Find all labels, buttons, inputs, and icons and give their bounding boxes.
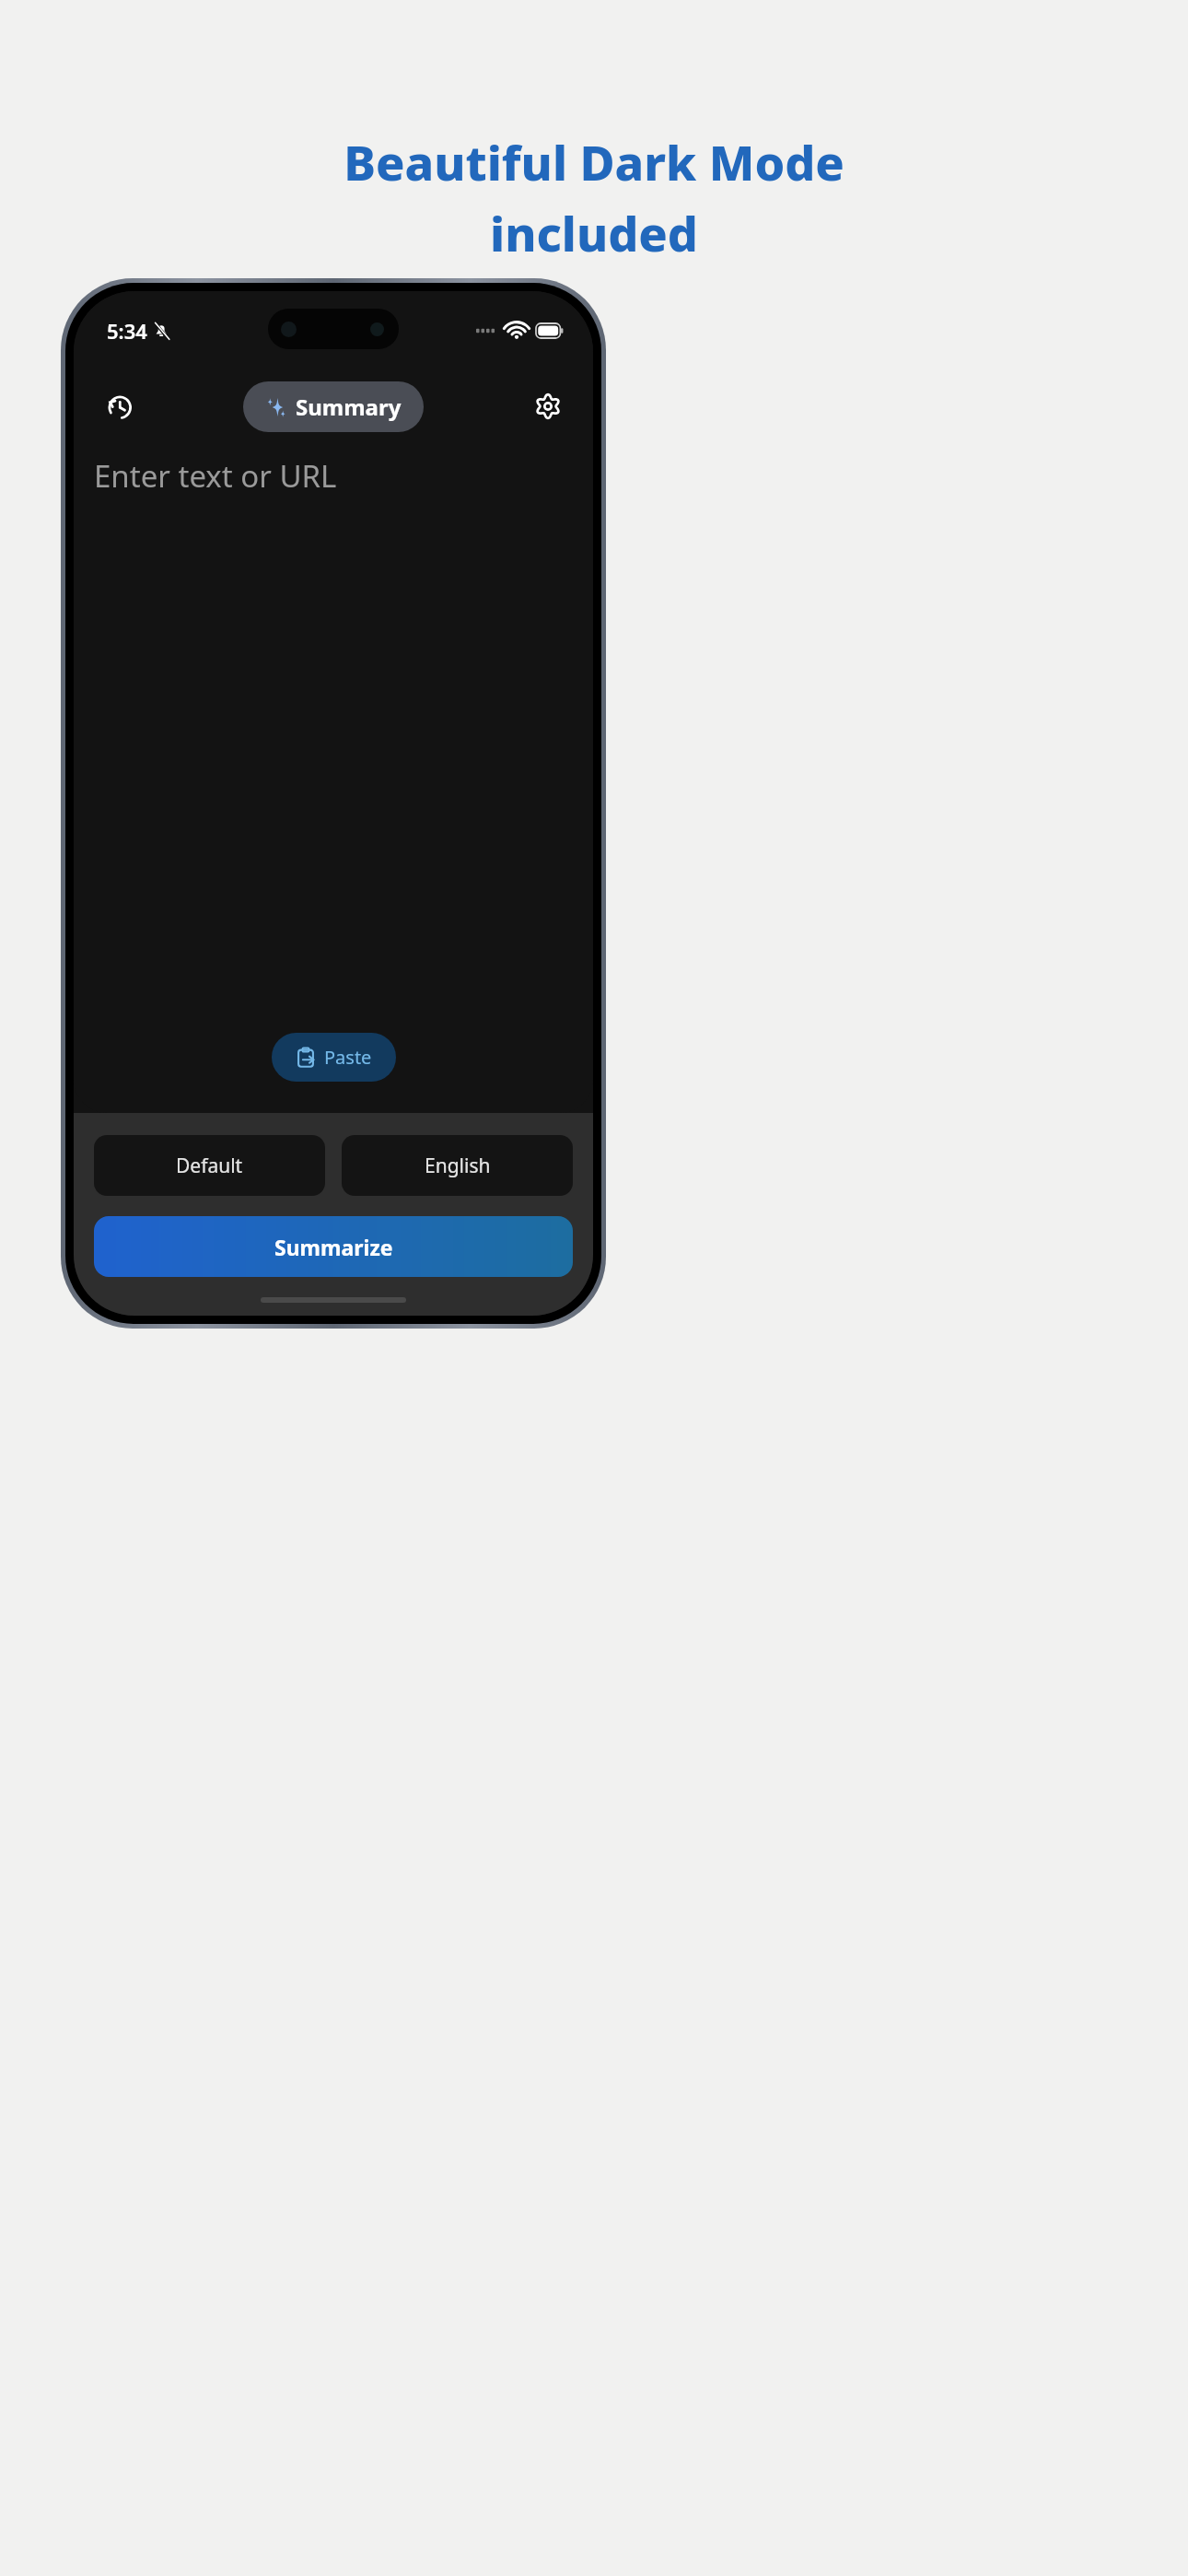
staticText: Default xyxy=(176,1153,243,1179)
button[interactable]: Paste xyxy=(272,1033,396,1082)
staticText: Paste xyxy=(324,1045,372,1070)
staticText: English xyxy=(425,1153,491,1179)
staticText: Summary xyxy=(296,392,402,422)
staticText: included xyxy=(490,200,698,265)
button[interactable]: Summary xyxy=(243,381,424,432)
staticText: Enter text or URL xyxy=(94,455,337,497)
button[interactable]: Summarize xyxy=(94,1216,573,1277)
button[interactable]: Settings xyxy=(527,385,569,427)
staticText: 5:34 xyxy=(107,317,147,345)
button[interactable]: Default xyxy=(94,1135,325,1196)
staticText: Beautiful Dark Mode xyxy=(344,129,844,194)
button[interactable]: History xyxy=(98,385,140,427)
button[interactable]: English xyxy=(342,1135,573,1196)
staticText: Summarize xyxy=(274,1233,393,1261)
